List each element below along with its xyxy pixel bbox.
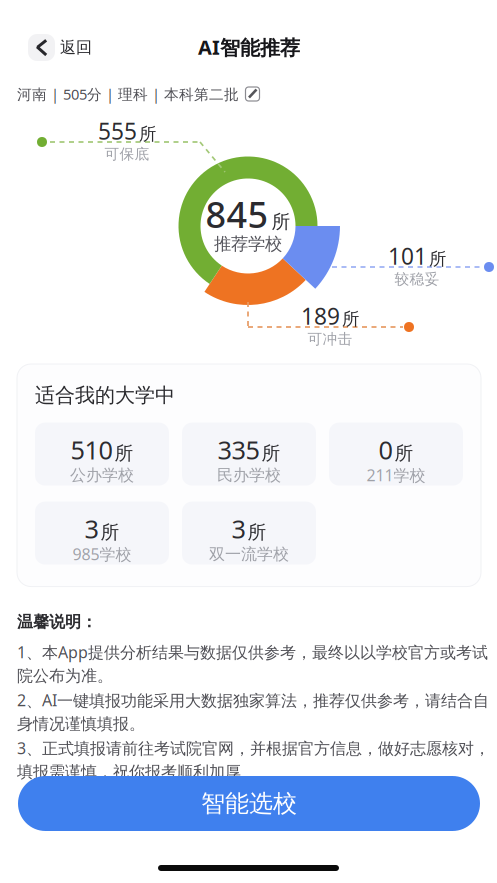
staticText: 所 bbox=[394, 442, 413, 465]
staticText: 填报需谨慎，祝你报考顺利加厚 bbox=[17, 762, 241, 782]
button[interactable]: 返回 bbox=[28, 34, 90, 61]
staticText: 3 bbox=[231, 512, 245, 545]
staticText: 2、AI一键填报功能采用大数据独家算法，推荐仅供参考，请结合自 bbox=[17, 689, 489, 711]
staticText: 211学校 bbox=[366, 464, 425, 486]
staticText: 公办学校 bbox=[70, 465, 134, 485]
staticText: 河南 | 505分 | 理科 | 本科第二批 bbox=[17, 84, 239, 104]
staticText: 3、正式填报请前往考试院官网，并根据官方信息，做好志愿核对， bbox=[17, 737, 490, 759]
staticText: 所 bbox=[100, 521, 119, 544]
staticText: 所 bbox=[271, 210, 290, 233]
staticText: 智能选校 bbox=[201, 789, 297, 818]
staticText: 510 bbox=[70, 433, 112, 466]
staticText: 所 bbox=[114, 442, 133, 465]
staticText: 845 bbox=[205, 190, 268, 238]
staticText: 985学校 bbox=[72, 543, 131, 565]
staticText: 民办学校 bbox=[217, 465, 281, 485]
staticText: 可保底 bbox=[104, 145, 149, 163]
staticText: 所 bbox=[261, 442, 280, 465]
staticText: 院公布为准。 bbox=[17, 666, 113, 686]
staticText: 返回 bbox=[60, 38, 92, 57]
staticText: 可冲击 bbox=[307, 330, 352, 348]
button[interactable]: 智能选校 bbox=[18, 776, 480, 831]
staticText: 推荐学校 bbox=[214, 233, 282, 255]
staticText: 适合我的大学中 bbox=[35, 383, 175, 408]
staticText: 所 bbox=[429, 248, 446, 270]
staticText: 身情况谨慎填报。 bbox=[17, 714, 145, 734]
staticText: 温馨说明： bbox=[17, 612, 97, 632]
staticText: 所 bbox=[247, 521, 266, 544]
staticText: 1、本App提供分析结果与数据仅供参考，最终以以学校官方或考试 bbox=[17, 641, 488, 663]
staticText: 3 bbox=[84, 512, 98, 545]
staticText: 较稳妥 bbox=[394, 270, 439, 288]
staticText: 335 bbox=[217, 433, 259, 466]
staticText: 189 bbox=[301, 301, 340, 331]
staticText: AI智能推荐 bbox=[198, 34, 300, 60]
staticText: 所 bbox=[139, 123, 156, 145]
staticText: 0 bbox=[378, 433, 392, 466]
staticText: 所 bbox=[342, 308, 359, 330]
staticText: 101 bbox=[388, 241, 427, 271]
staticText: 双一流学校 bbox=[209, 544, 289, 564]
staticText: 555 bbox=[98, 116, 137, 146]
